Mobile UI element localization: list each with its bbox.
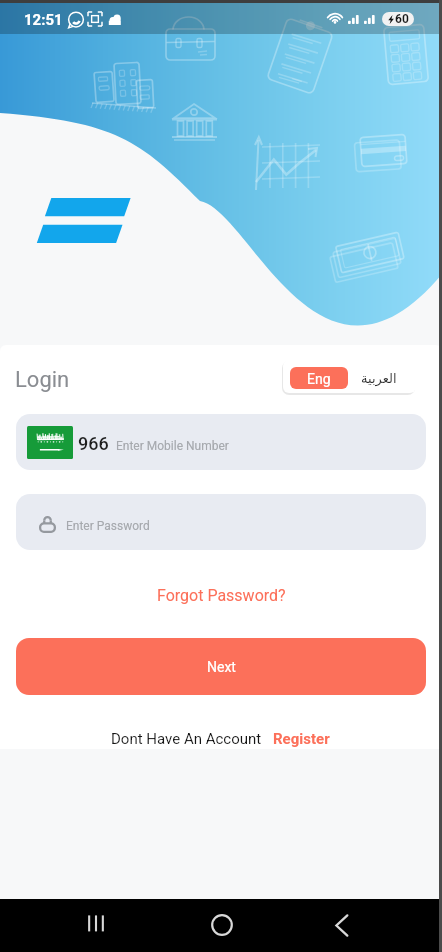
other: Password: [39, 515, 56, 533]
button[interactable]: 966: [16, 414, 426, 470]
staticText: 966: [78, 433, 109, 454]
button[interactable]: العربية: [348, 366, 409, 388]
staticText: Forgot Password?: [157, 586, 286, 604]
staticText: 60: [395, 12, 409, 26]
staticText: 12:51: [24, 11, 63, 29]
staticText: Login: [15, 367, 70, 393]
staticText: العربية: [361, 371, 397, 386]
button[interactable]: Home: [204, 910, 240, 940]
staticText: Eng: [307, 371, 331, 387]
staticText: Register: [273, 730, 330, 748]
staticText: Dont Have An Account: [111, 730, 262, 748]
staticText: Next: [207, 659, 236, 675]
button[interactable]: Register: [271, 724, 332, 747]
button[interactable]: Password: [16, 494, 426, 550]
button[interactable]: Next: [16, 638, 426, 695]
staticText: Enter Password: [66, 519, 150, 533]
button[interactable]: Back: [324, 910, 360, 940]
button[interactable]: Forgot Password?: [149, 579, 294, 604]
staticText: Enter Mobile Number: [116, 439, 229, 453]
button[interactable]: Recents: [78, 910, 114, 940]
button[interactable]: Eng: [290, 367, 348, 389]
